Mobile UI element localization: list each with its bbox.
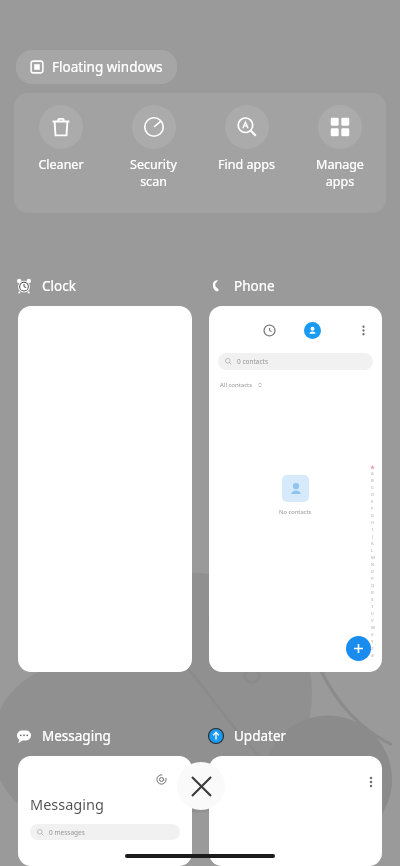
staticText: A (371, 471, 374, 477)
staticText: Messaging (42, 727, 111, 745)
button[interactable]: Clock (16, 275, 76, 297)
staticText: F (371, 506, 374, 512)
staticText: U (371, 611, 375, 617)
staticText: N (371, 562, 375, 568)
staticText: R (371, 590, 374, 596)
button[interactable]: Manage apps (293, 93, 386, 190)
staticText: 0 messages (49, 828, 85, 837)
staticText: O (371, 569, 375, 575)
staticText: # (371, 653, 374, 659)
button[interactable]: 0 contacts (218, 353, 373, 370)
staticText: All contacts (220, 381, 253, 389)
button[interactable]: 0 messages (30, 824, 180, 840)
staticText: Clock (42, 277, 76, 295)
staticText: T (371, 604, 374, 610)
staticText: Z (371, 646, 374, 652)
staticText: K (371, 541, 374, 547)
button[interactable]: Cleaner (14, 93, 107, 173)
staticText: H (371, 520, 375, 526)
button[interactable]: Floating windows (16, 50, 177, 84)
staticText: Q (371, 583, 375, 589)
staticText: D (371, 492, 375, 498)
button[interactable]: Messaging (18, 756, 192, 866)
staticText: Security scan (130, 156, 177, 190)
staticText: E (371, 499, 374, 505)
staticText: P (371, 576, 374, 582)
staticText: Cleaner (38, 156, 84, 173)
staticText: S (371, 597, 374, 603)
staticText: Messaging (30, 794, 104, 814)
button[interactable]: Security scan (107, 93, 200, 190)
staticText: Manage apps (316, 156, 364, 190)
staticText: Updater (234, 727, 287, 745)
button[interactable]: 0 contacts (209, 306, 382, 672)
staticText: J (372, 534, 374, 540)
staticText: G (371, 513, 375, 519)
staticText: No contacts (279, 508, 312, 516)
staticText: C (371, 485, 374, 491)
button[interactable]: Find apps (200, 93, 293, 173)
staticText: Y (371, 639, 374, 645)
button[interactable]: Updater (208, 725, 287, 747)
staticText: 0 contacts (237, 357, 269, 366)
staticText: M (371, 555, 375, 561)
staticText: I (372, 527, 374, 533)
staticText: B (371, 478, 374, 484)
button[interactable]: Messaging (16, 725, 111, 747)
button[interactable] (209, 756, 382, 866)
staticText: Floating windows (52, 58, 163, 76)
staticText: V (371, 618, 374, 624)
button[interactable]: Add contact (346, 636, 371, 661)
staticText: X (371, 632, 374, 638)
button[interactable]: Phone (208, 275, 275, 297)
staticText: Find apps (218, 156, 275, 173)
staticText: W (371, 625, 375, 631)
button[interactable] (18, 306, 192, 672)
staticText: L (371, 548, 374, 554)
staticText: Phone (234, 277, 275, 295)
button[interactable]: Close (177, 762, 225, 810)
